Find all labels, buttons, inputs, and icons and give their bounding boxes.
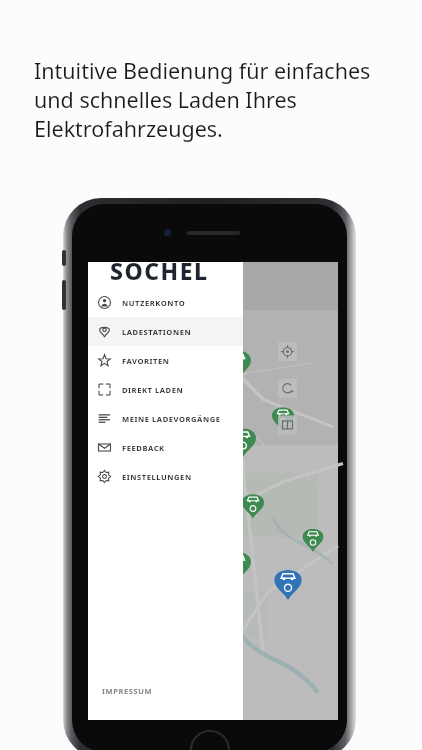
staticText: EINSTELLUNGEN xyxy=(122,472,192,482)
button[interactable]: LADESTATIONEN xyxy=(88,317,243,346)
staticText: IMPRESSUM xyxy=(102,686,153,696)
staticText: DIREKT LADEN xyxy=(122,385,184,395)
staticText: MEINE LADEVORGÄNGE xyxy=(122,414,221,424)
staticText: NUTZERKONTO xyxy=(122,298,186,308)
button[interactable]: FAVORITEN xyxy=(88,346,243,375)
button[interactable]: MEINE LADEVORGÄNGE xyxy=(88,404,243,433)
staticText: FEEDBACK xyxy=(122,443,165,453)
staticText: FAVORITEN xyxy=(122,356,170,366)
staticText: Elektrofahrzeuges. xyxy=(34,114,223,143)
staticText: und schnelles Laden Ihres xyxy=(34,85,297,114)
button[interactable]: EINSTELLUNGEN xyxy=(88,462,243,491)
staticText: SOCHEL xyxy=(110,255,209,286)
button[interactable]: DIREKT LADEN xyxy=(88,375,243,404)
staticText: Intuitive Bedienung für einfaches xyxy=(34,56,371,85)
button[interactable]: FEEDBACK xyxy=(88,433,243,462)
staticText: LADESTATIONEN xyxy=(122,327,192,337)
button[interactable]: NUTZERKONTO xyxy=(88,288,243,317)
button[interactable]: IMPRESSUM xyxy=(88,678,243,720)
